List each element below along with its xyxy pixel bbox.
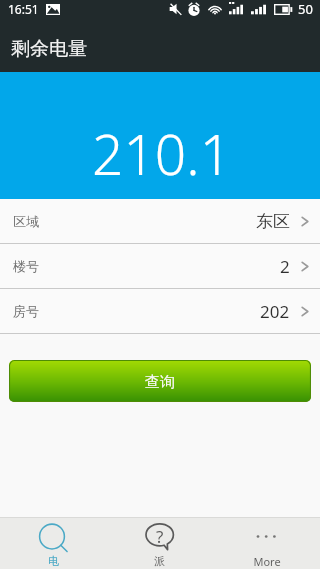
button[interactable]: 查询 [9,360,311,402]
staticText: 剩余电量 [11,37,87,61]
staticText: 楼号 [13,258,39,274]
button[interactable]: 区域 [0,199,320,243]
staticText: 房号 [13,303,39,319]
button[interactable]: More [213,518,320,569]
staticText: 东区 [256,211,290,232]
staticText: 202 [260,300,290,323]
staticText: More [253,554,281,569]
staticText: 查询 [145,373,175,392]
button[interactable]: 楼号 [0,244,320,288]
staticText: 2 [280,255,290,278]
staticText: 电 [48,554,59,568]
staticText: 16:51 [8,1,39,17]
button[interactable]: 房号 [0,289,320,333]
staticText: 50 [298,0,313,18]
staticText: 区域 [13,213,39,229]
staticText: ? [156,525,164,548]
button[interactable]: Help [106,518,213,569]
staticText: 派 [154,554,165,568]
staticText: 210.1 [92,116,232,191]
button[interactable]: Search [0,518,106,569]
